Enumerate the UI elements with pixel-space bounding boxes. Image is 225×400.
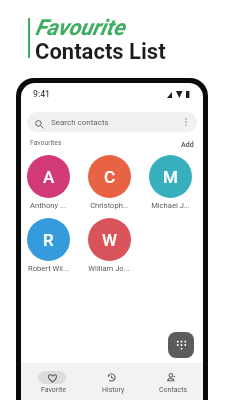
button[interactable]: Favorite (24, 363, 83, 394)
staticText: Favourite (35, 15, 125, 41)
staticText: History (102, 386, 125, 394)
staticText: Anthony ... (30, 201, 66, 210)
staticText: W (102, 230, 117, 250)
staticText: 9:41 (33, 89, 50, 99)
button[interactable]: C (82, 155, 136, 210)
button[interactable]: Contacts (143, 363, 203, 394)
staticText: R (43, 230, 54, 250)
staticText: Favourites (30, 139, 62, 147)
button[interactable]: A (21, 155, 75, 210)
staticText: Add (181, 140, 194, 148)
button[interactable]: Search contacts (27, 112, 197, 132)
button[interactable]: R (21, 218, 75, 273)
staticText: Contacts (159, 386, 188, 394)
staticText: Robert Wil... (28, 264, 69, 273)
button[interactable]: W (82, 218, 136, 273)
staticText: William Jo... (88, 264, 130, 273)
button[interactable]: M (143, 155, 197, 210)
staticText: M (163, 167, 178, 187)
button[interactable]: History (83, 363, 143, 394)
staticText: Michael J... (151, 201, 190, 210)
button[interactable]: Add (181, 140, 194, 148)
button[interactable]: More options (181, 117, 191, 127)
staticText: Christoph... (90, 201, 129, 210)
staticText: Search contacts (51, 118, 109, 127)
staticText: Favorite (41, 386, 66, 394)
staticText: C (104, 167, 116, 187)
staticText: Contacts List (35, 39, 166, 65)
button[interactable]: Dialpad (168, 332, 194, 358)
staticText: A (43, 167, 55, 187)
